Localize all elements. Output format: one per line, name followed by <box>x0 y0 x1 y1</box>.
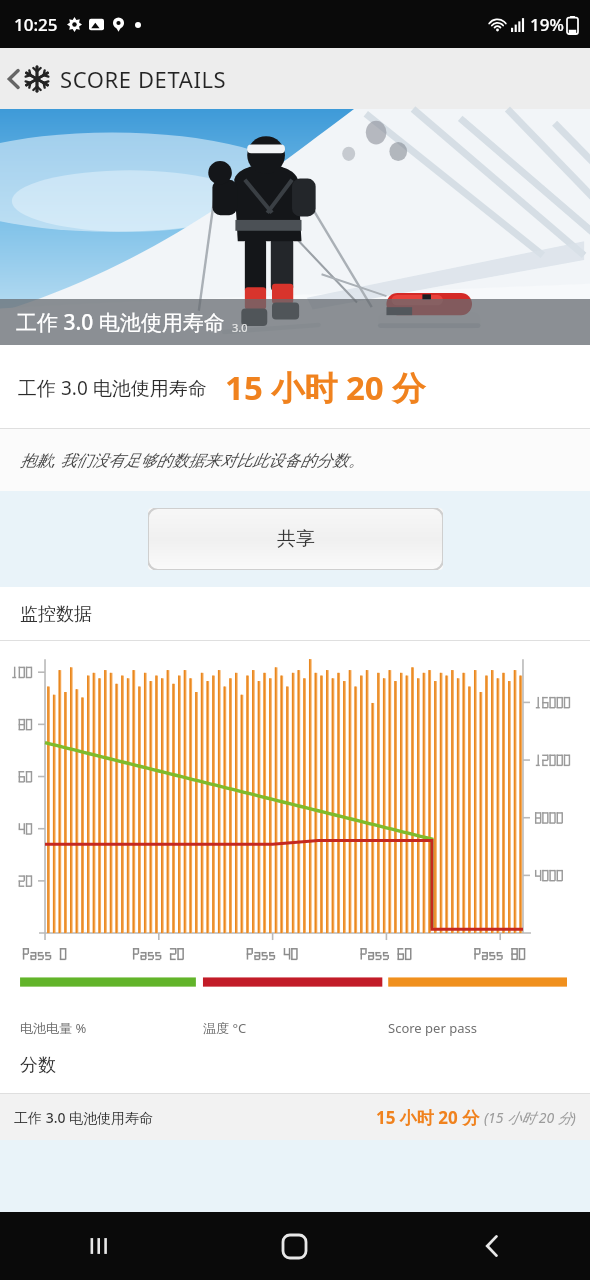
button[interactable]: Recent apps <box>0 1212 196 1280</box>
staticText: Score per pass <box>388 1019 477 1037</box>
staticText: (15 小时 20 分) <box>484 1108 576 1127</box>
staticText: 10:25 <box>14 13 58 36</box>
staticText: 15 小时 20 分 <box>376 1106 480 1129</box>
button[interactable]: Back <box>393 1212 590 1280</box>
button[interactable]: 共享 <box>148 508 443 570</box>
staticText: 分数 <box>20 1054 56 1077</box>
staticText: 温度 °C <box>203 1019 388 1037</box>
staticText: 工作 3.0 电池使用寿命 <box>18 375 207 401</box>
staticText: 19% <box>530 13 564 36</box>
staticText: 抱歉, 我们没有足够的数据来对比此设备的分数。 <box>20 449 365 471</box>
button[interactable]: 工作 3.0 电池使用寿命 <box>0 345 590 429</box>
staticText: 共享 <box>277 527 315 551</box>
button[interactable]: Back <box>0 56 241 102</box>
staticText: 3.0 <box>232 320 248 335</box>
button[interactable]: 工作 3.0 电池使用寿命 <box>0 1094 590 1140</box>
staticText: SCORE DETAILS <box>60 64 227 94</box>
staticText: 15 小时 20 分 <box>225 365 426 410</box>
staticText: 监控数据 <box>20 603 92 626</box>
staticText: 工作 3.0 电池使用寿命 <box>16 308 225 337</box>
staticText: 工作 3.0 电池使用寿命 <box>14 1108 154 1127</box>
staticText: 电池电量 % <box>20 1019 203 1037</box>
other: Back <box>8 69 19 89</box>
button[interactable]: Home <box>196 1212 393 1280</box>
